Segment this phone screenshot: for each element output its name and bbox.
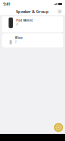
staticText: ✕ <box>59 10 61 13</box>
staticText: Pod Mobile <box>16 19 33 22</box>
staticText: 9:41 <box>3 1 10 7</box>
button[interactable]: Close <box>56 8 63 15</box>
staticText: 2 <box>15 40 17 44</box>
staticText: Speaker & Group <box>16 9 49 14</box>
button[interactable]: Pod Mobile <box>2 16 63 32</box>
button[interactable]: Wine <box>2 33 63 47</box>
staticText: 4 <box>16 23 18 26</box>
staticText: Wine <box>15 36 23 40</box>
button[interactable]: Siri <box>54 123 63 132</box>
